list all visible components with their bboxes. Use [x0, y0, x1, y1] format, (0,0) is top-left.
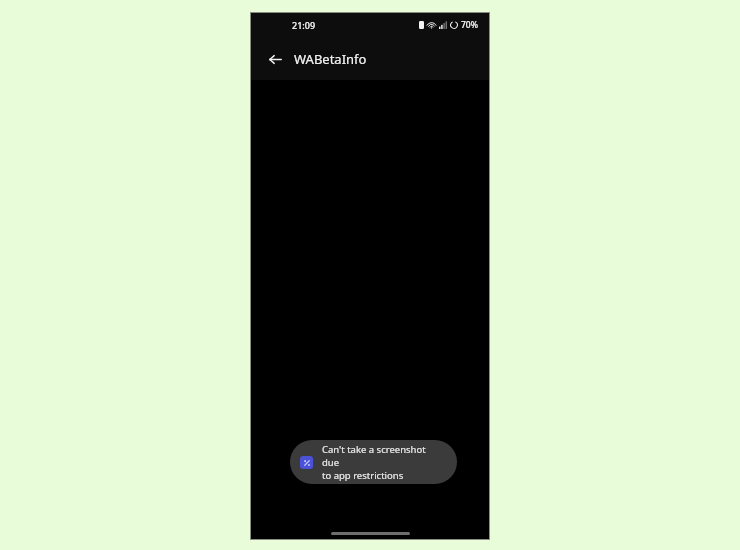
staticText: 70%	[461, 19, 478, 31]
staticText: 21:09	[292, 19, 316, 31]
button[interactable]: Can't take a screenshot due to app restr…	[290, 440, 457, 484]
staticText: WABetaInfo	[294, 50, 367, 68]
staticText: Can't take a screenshot due to app restr…	[322, 443, 445, 482]
button[interactable]: Back	[262, 46, 288, 72]
